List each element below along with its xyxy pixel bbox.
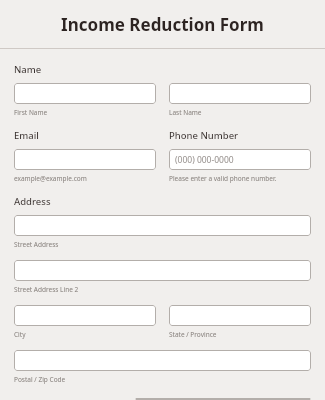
staticText: First Name bbox=[14, 108, 48, 117]
button[interactable] bbox=[14, 350, 311, 371]
staticText: (000) 000-0000 bbox=[175, 154, 234, 166]
button[interactable] bbox=[14, 149, 156, 170]
button[interactable] bbox=[14, 305, 156, 326]
staticText: Street Address Line 2 bbox=[14, 285, 79, 294]
staticText: Phone Number bbox=[169, 129, 239, 142]
staticText: example@example.com bbox=[14, 174, 87, 183]
staticText: Last Name bbox=[169, 108, 202, 117]
staticText: Name bbox=[14, 63, 42, 76]
button[interactable] bbox=[169, 83, 311, 104]
button[interactable]: (000) 000-0000 bbox=[169, 149, 311, 170]
staticText: Income Reduction Form bbox=[61, 13, 264, 36]
button[interactable] bbox=[135, 398, 311, 400]
button[interactable] bbox=[169, 305, 311, 326]
button[interactable] bbox=[14, 83, 156, 104]
button[interactable] bbox=[14, 260, 311, 281]
staticText: City bbox=[14, 330, 26, 339]
staticText: State / Province bbox=[169, 330, 217, 339]
staticText: Address bbox=[14, 195, 51, 208]
staticText: Email bbox=[14, 129, 39, 142]
staticText: Street Address bbox=[14, 240, 59, 249]
staticText: Postal / Zip Code bbox=[14, 375, 66, 384]
staticText: Please enter a valid phone number. bbox=[169, 174, 277, 183]
button[interactable] bbox=[14, 215, 311, 236]
